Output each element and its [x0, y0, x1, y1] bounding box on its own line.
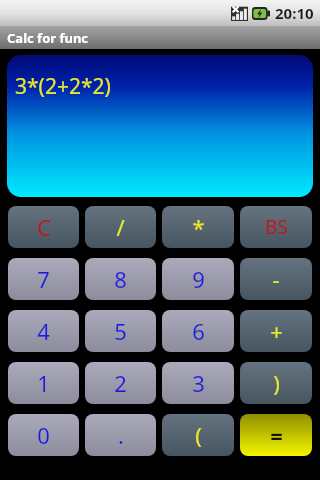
button[interactable]: 5 — [85, 310, 156, 352]
button[interactable]: 3 — [162, 362, 234, 404]
button[interactable]: + — [240, 310, 312, 352]
staticText: Calc for func — [7, 29, 89, 47]
button[interactable]: = — [240, 414, 312, 456]
staticText: 9 — [192, 264, 205, 294]
button[interactable]: 6 — [162, 310, 234, 352]
staticText: * — [192, 212, 205, 242]
staticText: 1 — [37, 368, 50, 398]
staticText: C — [37, 212, 51, 242]
staticText: 7 — [37, 264, 50, 294]
staticText: - — [272, 264, 280, 294]
button[interactable]: 1 — [8, 362, 79, 404]
staticText: 2 — [114, 368, 127, 398]
button[interactable]: BS — [240, 206, 312, 248]
button[interactable]: 9 — [162, 258, 234, 300]
button[interactable]: 8 — [85, 258, 156, 300]
staticText: 3 — [192, 368, 205, 398]
staticText: 6 — [192, 316, 205, 346]
staticText: ) — [273, 368, 280, 398]
staticText: 20:10 — [275, 3, 314, 23]
button[interactable]: 4 — [8, 310, 79, 352]
button[interactable]: . — [85, 414, 156, 456]
staticText: 0 — [37, 420, 50, 450]
button[interactable]: * — [162, 206, 234, 248]
button[interactable]: ( — [162, 414, 234, 456]
button[interactable]: ) — [240, 362, 312, 404]
staticText: = — [270, 420, 283, 450]
staticText: + — [270, 316, 283, 346]
staticText: 4 — [37, 316, 50, 346]
button[interactable]: C — [8, 206, 79, 248]
staticText: ( — [195, 420, 202, 450]
staticText: BS — [265, 214, 288, 240]
staticText: . — [118, 420, 124, 450]
button[interactable]: - — [240, 258, 312, 300]
button[interactable]: 0 — [8, 414, 79, 456]
staticText: 3*(2+2*2) — [15, 72, 111, 101]
staticText: 8 — [114, 264, 127, 294]
button[interactable]: 7 — [8, 258, 79, 300]
button[interactable]: 2 — [85, 362, 156, 404]
staticText: 5 — [114, 316, 127, 346]
button[interactable]: / — [85, 206, 156, 248]
button[interactable]: Expression display — [7, 55, 313, 197]
staticText: / — [116, 212, 125, 242]
